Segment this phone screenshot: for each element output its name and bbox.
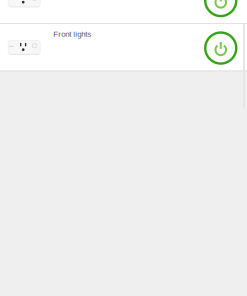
- button[interactable]: Porch: [0, 0, 247, 23]
- button[interactable]: Toggle power: [197, 0, 244, 23]
- staticText: Front lights: [53, 29, 91, 38]
- button[interactable]: Front lights: [0, 24, 247, 70]
- button[interactable]: Toggle power: [197, 24, 244, 70]
